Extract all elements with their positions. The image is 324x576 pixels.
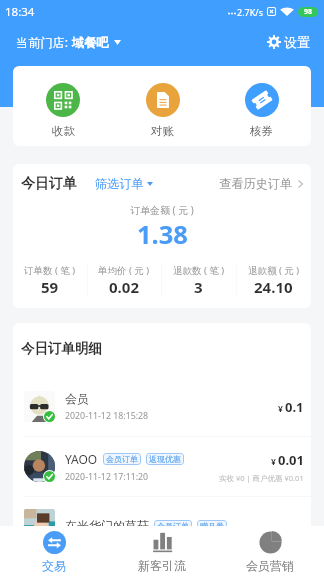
button[interactable]: 当前门店: bbox=[16, 34, 121, 51]
staticText: 2020-11-12 17:11:20 bbox=[65, 471, 149, 483]
staticText: ¥ bbox=[271, 456, 276, 468]
staticText: 赠品券 bbox=[200, 521, 224, 531]
staticText: 订单金额 ( 元 ) bbox=[130, 203, 194, 217]
staticText: 2020-11-12 18:15:28 bbox=[65, 410, 149, 422]
staticText: 新客引流 bbox=[138, 558, 186, 573]
staticText: 0.01 bbox=[278, 451, 304, 469]
staticText: 实收 ¥0 | 商户优惠 ¥0.01 bbox=[219, 473, 304, 483]
staticText: 交易 bbox=[42, 558, 66, 573]
staticText: 返现优惠 bbox=[149, 454, 181, 464]
button[interactable]: 交易 bbox=[0, 526, 108, 576]
staticText: 核券 bbox=[250, 124, 273, 138]
staticText: 收款 bbox=[52, 124, 75, 138]
staticText: 0.1 bbox=[285, 398, 304, 416]
staticText: 当前门店: bbox=[16, 34, 72, 51]
staticText: 2.7K/s bbox=[237, 6, 263, 18]
staticText: 59 bbox=[41, 277, 59, 296]
staticText: 今日订单 bbox=[21, 175, 77, 193]
button[interactable]: 收款 bbox=[13, 66, 113, 146]
staticText: YAOO bbox=[65, 451, 98, 467]
staticText: 会员订单 bbox=[106, 454, 138, 464]
staticText: 设置 bbox=[284, 34, 310, 50]
staticText: 0.02 bbox=[109, 277, 139, 296]
button[interactable]: 在光华门的草菇 bbox=[13, 497, 311, 553]
staticText: 域餐吧 bbox=[72, 35, 109, 50]
staticText: 订单数 ( 笔 ) bbox=[24, 264, 76, 277]
staticText: 98 bbox=[304, 7, 313, 17]
button[interactable]: 新客引流 bbox=[108, 526, 216, 576]
staticText: 18:34 bbox=[5, 4, 35, 20]
staticText: 今日订单明细 bbox=[21, 340, 102, 357]
staticText: 查看历史订单 bbox=[219, 176, 293, 191]
staticText: 单均价 ( 元 ) bbox=[98, 264, 150, 277]
staticText: 对账 bbox=[151, 124, 174, 138]
button[interactable]: 对账 bbox=[113, 66, 212, 146]
staticText: 退款数 ( 笔 ) bbox=[173, 264, 225, 277]
staticText: ¥ bbox=[278, 403, 283, 415]
button[interactable]: 查看历史订单 bbox=[219, 173, 303, 194]
staticText: 退款额 ( 元 ) bbox=[248, 264, 300, 277]
button[interactable]: 设置 bbox=[267, 34, 310, 50]
button[interactable]: 筛选订单 bbox=[95, 173, 153, 194]
staticText: 会员 bbox=[65, 391, 89, 406]
button[interactable]: 会员 bbox=[13, 377, 311, 436]
staticText: 在光华门的草菇 bbox=[65, 518, 149, 533]
staticText: 会员营销 bbox=[246, 558, 294, 573]
button[interactable]: 会员营销 bbox=[216, 526, 324, 576]
button[interactable]: YAOO bbox=[13, 437, 311, 496]
staticText: 3 bbox=[194, 277, 203, 296]
button[interactable]: 核券 bbox=[212, 66, 311, 146]
staticText: 1.38 bbox=[137, 217, 188, 252]
staticText: 会员订单 bbox=[157, 521, 189, 531]
staticText: 24.10 bbox=[254, 277, 293, 296]
staticText: 筛选订单 bbox=[95, 176, 144, 191]
